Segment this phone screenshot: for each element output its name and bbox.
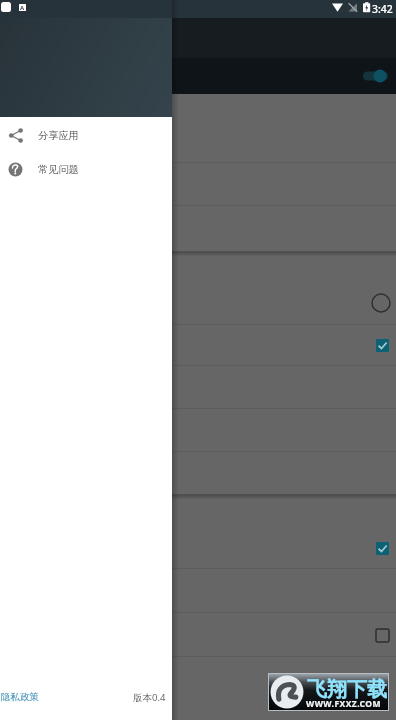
staticText: 版本0.4 [133,691,166,704]
staticText: WWW.FXXZ.COM [306,698,381,710]
staticText: 隐私政策 [1,691,39,703]
button[interactable] [0,657,396,719]
button[interactable]: 分享应用 [0,117,172,153]
button[interactable]: Toggle switch [362,64,396,88]
button[interactable]: Checkbox [0,613,396,656]
button[interactable]: Checkbox checked [370,333,394,357]
button[interactable]: Checkbox [370,623,394,647]
button[interactable]: Checkbox checked [0,528,396,568]
button[interactable] [0,409,396,451]
button[interactable] [0,120,396,162]
button[interactable]: 隐私政策 [0,688,40,706]
button[interactable]: Radio button [0,282,396,324]
button[interactable]: Checkbox checked [0,325,396,365]
staticText: 分享应用 [38,129,79,142]
staticText: 常见问题 [38,163,79,176]
button[interactable]: 常见问题 [0,153,172,186]
staticText: 飞翔下载 [307,677,387,702]
button[interactable] [0,163,396,205]
staticText: A [20,4,25,11]
button[interactable] [0,366,396,408]
button[interactable] [0,206,396,251]
button[interactable] [0,452,396,494]
button[interactable]: Checkbox checked [370,536,394,560]
staticText: 3:42 [372,2,393,16]
button[interactable]: Radio button [368,290,394,316]
button[interactable] [0,569,396,612]
